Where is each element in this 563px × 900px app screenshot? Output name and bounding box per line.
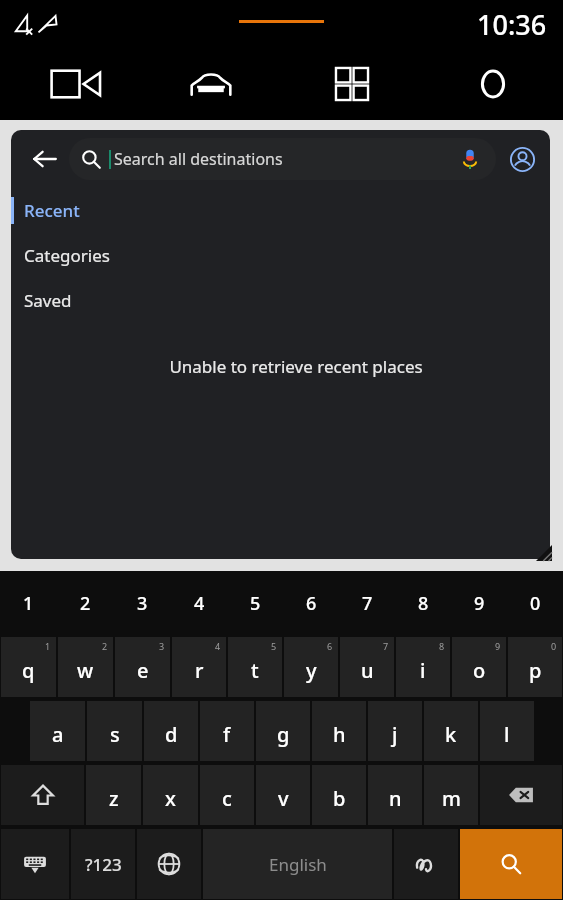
button[interactable]: m xyxy=(424,765,478,825)
staticText: 9 xyxy=(495,640,501,652)
staticText: 5 xyxy=(250,591,261,616)
button[interactable]: Voice search xyxy=(456,145,484,173)
button[interactable]: 9 xyxy=(451,571,507,636)
button[interactable]: Categories xyxy=(11,233,550,278)
staticText: h xyxy=(333,721,346,748)
staticText: 3 xyxy=(159,640,165,652)
staticText: 6 xyxy=(327,640,333,652)
staticText: i xyxy=(420,657,426,684)
staticText: 0 xyxy=(530,591,541,616)
staticText: y xyxy=(306,657,317,684)
staticText: 4 xyxy=(215,640,221,652)
button[interactable]: k xyxy=(424,701,478,761)
button[interactable]: Hide keyboard xyxy=(1,829,69,899)
staticText: q xyxy=(22,657,35,684)
button[interactable]: 4 xyxy=(172,637,226,697)
staticText: a xyxy=(52,721,64,748)
button[interactable]: ?123 xyxy=(71,829,135,899)
button[interactable]: Backspace xyxy=(480,765,562,825)
button[interactable]: Change language xyxy=(137,829,201,899)
button[interactable]: 6 xyxy=(283,571,339,636)
staticText: g xyxy=(277,721,290,748)
staticText: 5 xyxy=(271,640,277,652)
button[interactable]: English xyxy=(203,829,392,899)
button[interactable]: Media xyxy=(0,48,140,120)
button[interactable]: 6 xyxy=(284,637,338,697)
button[interactable]: 4 xyxy=(171,571,227,636)
staticText: c xyxy=(222,785,232,812)
button[interactable]: a xyxy=(30,701,85,761)
staticText: 3 xyxy=(137,591,148,616)
staticText: 8 xyxy=(439,640,445,652)
staticText: 4 xyxy=(194,591,205,616)
button[interactable]: b xyxy=(312,765,366,825)
staticText: Categories xyxy=(24,244,110,267)
button[interactable]: Apps xyxy=(281,48,422,120)
staticText: u xyxy=(361,657,374,684)
button[interactable]: 8 xyxy=(396,637,450,697)
button[interactable]: Shift xyxy=(1,765,84,825)
button[interactable]: g xyxy=(256,701,310,761)
button[interactable]: z xyxy=(86,765,141,825)
button[interactable]: Search xyxy=(460,829,562,899)
button[interactable]: s xyxy=(87,701,142,761)
staticText: o xyxy=(473,657,486,684)
button[interactable]: 1 xyxy=(0,571,57,636)
button[interactable]: h xyxy=(312,701,366,761)
button[interactable]: 0 xyxy=(507,571,563,636)
button[interactable]: c xyxy=(200,765,254,825)
button[interactable]: j xyxy=(368,701,422,761)
staticText: x xyxy=(165,785,176,812)
button[interactable]: Back xyxy=(23,137,67,181)
staticText: 0 xyxy=(551,640,557,652)
button[interactable]: 9 xyxy=(452,637,506,697)
staticText: 7 xyxy=(383,640,389,652)
button[interactable]: 2 xyxy=(58,637,113,697)
staticText: Search all destinations xyxy=(114,148,283,170)
button[interactable]: Home xyxy=(422,48,563,120)
button[interactable]: 7 xyxy=(339,571,395,636)
button[interactable]: Recent xyxy=(11,188,550,233)
staticText: ?123 xyxy=(85,853,122,876)
staticText: Recent xyxy=(24,199,80,222)
button[interactable]: Saved xyxy=(11,278,550,323)
button[interactable]: n xyxy=(368,765,422,825)
staticText: d xyxy=(165,721,178,748)
staticText: b xyxy=(333,785,346,812)
button[interactable]: Car xyxy=(140,48,281,120)
staticText: 2 xyxy=(80,591,91,616)
staticText: 1 xyxy=(45,640,51,652)
button[interactable]: d xyxy=(144,701,198,761)
staticText: k xyxy=(445,721,457,748)
button[interactable]: l xyxy=(480,701,534,761)
staticText: 6 xyxy=(306,591,317,616)
button[interactable]: x xyxy=(143,765,198,825)
staticText: v xyxy=(278,785,289,812)
staticText: n xyxy=(389,785,402,812)
button[interactable]: 0 xyxy=(508,637,562,697)
button[interactable]: Search all destinations xyxy=(69,138,496,180)
staticText: Saved xyxy=(24,289,72,312)
staticText: w xyxy=(77,657,94,684)
staticText: 7 xyxy=(362,591,373,616)
button[interactable]: 5 xyxy=(228,637,282,697)
staticText: 8 xyxy=(418,591,429,616)
button[interactable]: f xyxy=(200,701,254,761)
button[interactable]: 1 xyxy=(1,637,56,697)
button[interactable]: v xyxy=(256,765,310,825)
button[interactable]: 8 xyxy=(395,571,451,636)
button[interactable]: 2 xyxy=(57,571,114,636)
button[interactable]: 3 xyxy=(114,571,171,636)
button[interactable]: 5 xyxy=(227,571,283,636)
staticText: English xyxy=(269,853,327,876)
button[interactable]: 7 xyxy=(340,637,394,697)
staticText: 2 xyxy=(102,640,108,652)
button[interactable]: 3 xyxy=(115,637,170,697)
staticText: 1 xyxy=(23,591,34,616)
button[interactable]: Handwriting xyxy=(394,829,458,899)
staticText: e xyxy=(137,657,149,684)
staticText: Unable to retrieve recent places xyxy=(169,355,423,378)
staticText: j xyxy=(392,721,398,748)
button[interactable]: Account xyxy=(504,141,540,177)
staticText: m xyxy=(442,785,461,812)
